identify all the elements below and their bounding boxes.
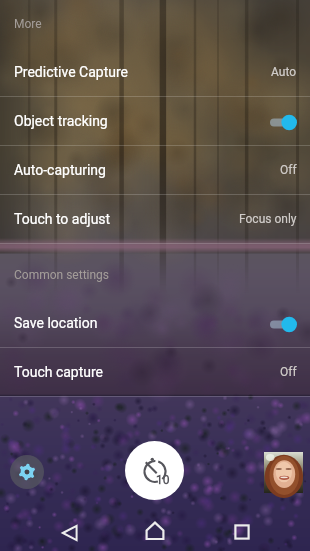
staticText: Object tracking (14, 113, 270, 129)
staticText: Touch capture (14, 364, 280, 380)
staticText: Off (280, 365, 297, 379)
staticText: Focus only (239, 212, 297, 226)
staticText: Auto-capturing (14, 162, 280, 178)
button[interactable]: Auto-capturing (0, 145, 310, 194)
staticText: Predictive Capture (14, 64, 271, 80)
button[interactable]: Home (134, 510, 176, 551)
button[interactable]: Predictive Capture (0, 47, 310, 96)
staticText: Save location (14, 315, 270, 331)
staticText: Off (280, 163, 297, 177)
button[interactable]: Self timer 10 seconds (125, 441, 184, 500)
button[interactable]: Save location (0, 298, 310, 347)
button[interactable]: Object tracking (0, 96, 310, 145)
button[interactable]: Touch capture (0, 347, 310, 396)
button[interactable]: Back (49, 512, 91, 551)
staticText: Touch to adjust (14, 211, 239, 227)
button[interactable]: Camera settings (10, 455, 44, 489)
staticText: More (14, 17, 42, 31)
staticText: Auto (271, 65, 297, 79)
button[interactable]: Touch to adjust (0, 194, 310, 243)
button[interactable]: Gallery (264, 452, 303, 493)
staticText: Common settings (14, 268, 110, 282)
staticText: 10 (156, 473, 170, 487)
button[interactable]: Recent apps (221, 511, 263, 551)
